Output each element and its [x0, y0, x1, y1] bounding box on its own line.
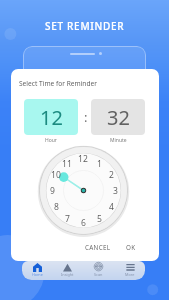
staticText: 9 [50, 185, 55, 195]
staticText: 6 [81, 217, 86, 227]
staticText: 7 [65, 213, 70, 223]
staticText: 2 [109, 169, 114, 179]
button[interactable]: CANCEL [81, 240, 115, 255]
staticText: Select Time for Reminder [19, 79, 97, 88]
staticText: 10 [51, 169, 61, 179]
button[interactable]: 32 [91, 99, 145, 135]
staticText: OK [126, 243, 136, 252]
staticText: More [125, 272, 135, 277]
staticText: 3 [113, 185, 118, 195]
staticText: Scan [94, 272, 103, 277]
button[interactable]: 12 [24, 99, 78, 135]
staticText: CANCEL [85, 243, 111, 252]
staticText: 12 [40, 104, 63, 131]
button[interactable]: More [114, 261, 145, 280]
staticText: 8 [54, 201, 59, 211]
staticText: : [84, 108, 88, 126]
button[interactable]: OK [122, 240, 140, 255]
staticText: 4 [109, 201, 114, 211]
staticText: 1 [97, 158, 102, 168]
button[interactable]: Home [22, 261, 52, 280]
staticText: 12 [78, 153, 88, 163]
button[interactable]: Scan [83, 261, 114, 280]
staticText: Insight [61, 272, 74, 277]
staticText: 32 [107, 104, 130, 131]
staticText: SET REMINDER [45, 19, 125, 33]
staticText: Home [32, 272, 43, 277]
button[interactable]: Insight [52, 261, 83, 280]
staticText: 5 [97, 213, 102, 223]
staticText: 11 [62, 158, 72, 168]
staticText: Minute [110, 137, 127, 144]
staticText: Hour [45, 137, 57, 144]
